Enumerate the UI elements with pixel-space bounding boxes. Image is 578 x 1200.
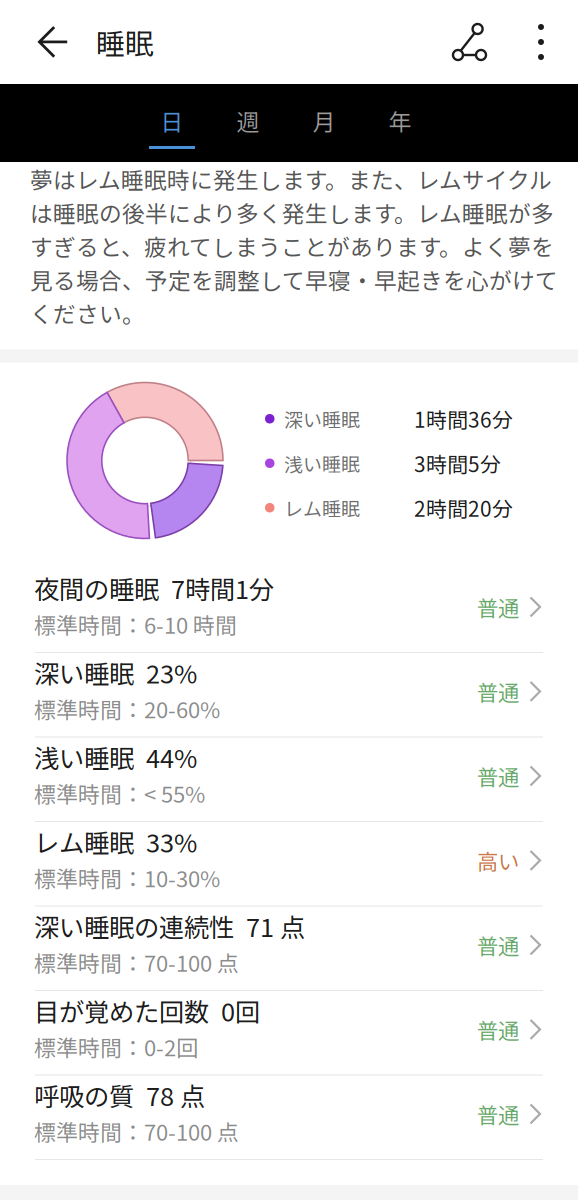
staticText: 日 [160, 104, 183, 137]
button[interactable]: 月 [286, 84, 362, 162]
staticText: 標準時間：70-100 点 [34, 946, 239, 978]
button[interactable]: 年 [362, 84, 438, 162]
staticText: 普通 [477, 929, 519, 960]
staticText: 深い睡眠の連続性 71 点 [34, 907, 305, 944]
button[interactable]: 睡眠 [96, 0, 216, 84]
staticText: 普通 [477, 760, 519, 791]
button[interactable]: 浅い睡眠 44% [0, 737, 578, 821]
staticText: 普通 [477, 1098, 519, 1129]
button[interactable]: レム睡眠 33% [0, 822, 578, 905]
staticText: 浅い睡眠 44% [34, 738, 197, 775]
staticText: 普通 [477, 591, 519, 622]
staticText: 標準時間：< 55% [34, 777, 205, 809]
staticText: 2時間20分 [414, 493, 513, 523]
staticText: 目が覚めた回数 0回 [34, 992, 260, 1029]
staticText: 標準時間：6-10 時間 [34, 608, 237, 640]
staticText: 年 [388, 104, 411, 137]
staticText: レム睡眠 [284, 494, 360, 521]
button[interactable]: 夜間の睡眠 7時間1分 [0, 568, 578, 652]
staticText: は睡眠の後半により多く発生します。レム睡眠が多 [30, 196, 554, 229]
staticText: 月 [312, 104, 335, 137]
staticText: 普通 [477, 1014, 519, 1045]
staticText: 週 [236, 104, 259, 137]
button[interactable]: Share [436, 0, 504, 84]
staticText: 夢はレム睡眠時に発生します。また、レムサイクル [30, 162, 552, 195]
staticText: すぎると、疲れてしまうことがあります。よく夢を [30, 229, 554, 262]
staticText: ください。 [30, 296, 145, 329]
staticText: 標準時間：10-30% [34, 862, 220, 894]
staticText: 標準時間：0-2回 [34, 1031, 198, 1063]
staticText: 睡眠 [96, 21, 154, 63]
staticText: 高い [477, 845, 519, 876]
staticText: 普通 [477, 676, 519, 707]
staticText: 夜間の睡眠 7時間1分 [34, 569, 274, 606]
staticText: 呼吸の質 78 点 [34, 1076, 205, 1113]
staticText: 1時間36分 [414, 404, 513, 434]
staticText: レム睡眠 33% [34, 823, 197, 860]
staticText: 見る場合、予定を調整して早寝・早起きを心がけて [30, 263, 558, 296]
button[interactable]: 深い睡眠 23% [0, 653, 578, 736]
staticText: 深い睡眠 23% [34, 654, 197, 691]
button[interactable]: 日 [134, 84, 210, 162]
button[interactable]: 深い睡眠の連続性 71 点 [0, 906, 578, 990]
button[interactable]: More options [504, 0, 578, 84]
button[interactable]: 目が覚めた回数 0回 [0, 991, 578, 1074]
button[interactable]: 呼吸の質 78 点 [0, 1075, 578, 1159]
staticText: 標準時間：20-60% [34, 693, 220, 725]
staticText: 浅い睡眠 [284, 449, 360, 477]
staticText: 3時間5分 [414, 448, 501, 478]
staticText: 標準時間：70-100 点 [34, 1115, 239, 1147]
staticText: 深い睡眠 [284, 405, 360, 432]
button[interactable]: 週 [210, 84, 286, 162]
button[interactable]: Back [38, 0, 69, 84]
